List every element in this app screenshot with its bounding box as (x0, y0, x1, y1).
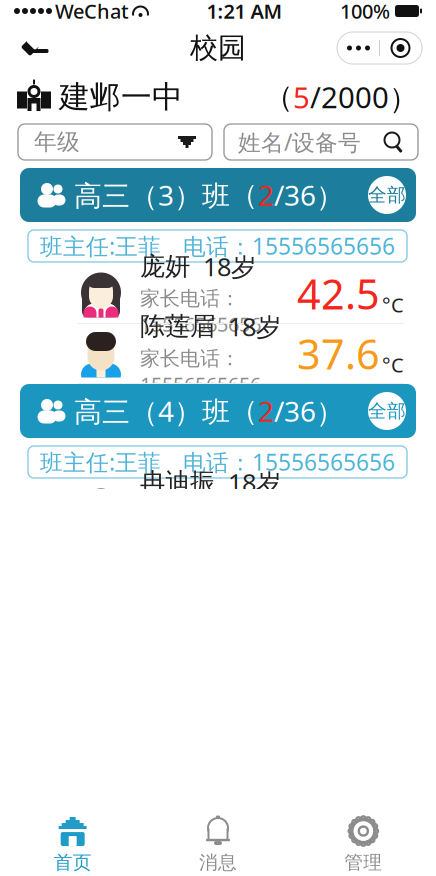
staticText: /36） (274, 176, 344, 214)
staticText: WeChat (55, 0, 129, 24)
staticText: 高三（3）班 (74, 176, 230, 214)
button[interactable]: 年级 (18, 124, 212, 160)
staticText: 2 (258, 176, 274, 214)
staticText: 校园 (190, 31, 246, 65)
button[interactable]: 首页 (0, 816, 145, 874)
staticText: 消息 (199, 851, 237, 874)
button[interactable]: 高三（3）班 (20, 168, 416, 222)
button[interactable]: 更多 (337, 32, 422, 64)
button[interactable]: 姓名/设备号 (224, 124, 418, 160)
button[interactable]: 陈莲眉 (78, 324, 404, 384)
staticText: 首页 (54, 851, 92, 874)
staticText: （ (230, 178, 258, 212)
staticText: （ (264, 79, 293, 115)
button[interactable]: 管理 (291, 816, 436, 874)
staticText: 5 (293, 77, 310, 116)
button[interactable]: 庞妍 (78, 264, 404, 324)
staticText: （ (230, 394, 258, 428)
staticText: 电话：15556565656 (183, 231, 395, 261)
staticText: 冉迪振 (140, 467, 215, 498)
button[interactable]: 消息 (145, 816, 291, 874)
staticText: 18岁 (228, 310, 281, 343)
staticText: 建邺一中 (59, 78, 183, 116)
staticText: 管理 (344, 851, 382, 874)
staticText: 家长电话：15556565656 (140, 286, 261, 337)
staticText: /2000） (310, 77, 418, 116)
staticText: 陈莲眉 (140, 311, 215, 342)
button[interactable]: 返回 (14, 26, 58, 70)
staticText: 1:21 AM (206, 0, 282, 24)
staticText: 42.5 (297, 266, 380, 321)
staticText: 全部 (368, 183, 406, 206)
button[interactable]: 冉迪振 (78, 480, 404, 540)
staticText: °C (382, 351, 404, 378)
staticText: /36） (274, 392, 344, 430)
staticText: 电话：15556565656 (183, 447, 395, 477)
staticText: 高三（4）班 (74, 392, 230, 430)
staticText: 班主任:王菲 (40, 231, 161, 261)
staticText: 年级 (34, 128, 80, 156)
staticText: 2 (258, 392, 274, 430)
staticText: 37.6 (297, 326, 380, 381)
staticText: 姓名/设备号 (238, 127, 361, 157)
button[interactable]: 高三（4）班 (20, 384, 416, 438)
staticText: 家长电话：15556565656 (140, 346, 261, 397)
staticText: 18岁 (228, 466, 281, 499)
staticText: 庞妍 (140, 251, 190, 282)
staticText: 全部 (368, 399, 406, 422)
staticText: °C (382, 291, 404, 318)
staticText: 100% (340, 0, 390, 24)
staticText: 18岁 (203, 250, 256, 283)
staticText: 班主任:王菲 (40, 447, 161, 477)
